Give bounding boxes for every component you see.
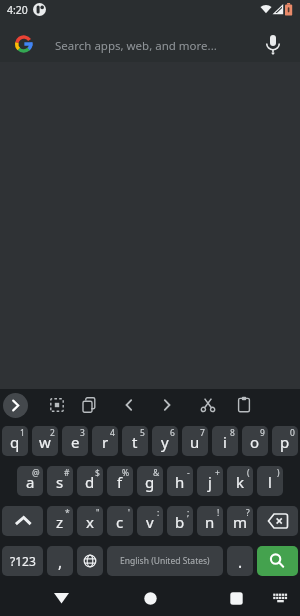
button[interactable]: f <box>107 466 133 496</box>
staticText: English (United States) <box>120 555 210 567</box>
staticText: d <box>85 472 95 492</box>
button[interactable]: j <box>197 466 223 496</box>
staticText: 6 <box>170 427 175 439</box>
staticText: ? <box>246 507 250 519</box>
staticText: c <box>116 512 124 532</box>
button[interactable]: o <box>242 426 268 456</box>
staticText: . <box>238 551 243 572</box>
staticText: 4 <box>110 427 115 439</box>
button[interactable] <box>45 393 69 417</box>
staticText: j <box>208 472 212 492</box>
staticText: 4:20 <box>7 3 28 17</box>
staticText: * <box>65 507 70 519</box>
button[interactable]: z <box>47 506 73 536</box>
staticText: z <box>56 512 64 532</box>
button[interactable] <box>117 393 141 417</box>
button[interactable]: English (United States) <box>107 546 223 576</box>
button[interactable]: x <box>77 506 103 536</box>
button[interactable] <box>155 393 179 417</box>
button[interactable] <box>41 578 82 616</box>
staticText: % <box>122 467 130 479</box>
staticText: m <box>233 512 248 532</box>
staticText: @ <box>32 467 40 479</box>
staticText: f <box>117 472 123 492</box>
staticText: 9 <box>260 427 265 439</box>
staticText: q <box>10 432 20 452</box>
button[interactable]: w <box>32 426 58 456</box>
button[interactable]: k <box>227 466 253 496</box>
button[interactable]: , <box>47 546 73 576</box>
staticText: b <box>175 512 185 532</box>
staticText: x <box>86 512 94 532</box>
staticText: y <box>161 432 169 452</box>
staticText: # <box>64 467 70 479</box>
button[interactable]: s <box>47 466 73 496</box>
staticText: 1 <box>20 427 25 439</box>
staticText: n <box>205 512 215 532</box>
button[interactable] <box>232 393 256 417</box>
staticText: 3 <box>80 427 85 439</box>
staticText: + <box>215 467 220 479</box>
button[interactable]: g <box>137 466 163 496</box>
button[interactable] <box>257 506 298 536</box>
button[interactable] <box>196 393 220 417</box>
staticText: v <box>146 512 154 532</box>
button[interactable]: t <box>122 426 148 456</box>
staticText: p <box>280 432 290 452</box>
staticText: t <box>132 432 138 452</box>
button[interactable] <box>2 506 43 536</box>
staticText: 8 <box>230 427 235 439</box>
button[interactable]: m <box>227 506 253 536</box>
button[interactable]: i <box>212 426 238 456</box>
staticText: " <box>96 507 100 519</box>
staticText: ! <box>217 507 220 519</box>
button[interactable] <box>3 393 28 418</box>
staticText: s <box>56 472 64 492</box>
button[interactable]: p <box>272 426 298 456</box>
staticText: ( <box>247 467 250 479</box>
button[interactable]: h <box>167 466 193 496</box>
staticText: 2 <box>50 427 55 439</box>
staticText: 5 <box>140 427 145 439</box>
button[interactable]: a <box>17 466 43 496</box>
button[interactable]: u <box>182 426 208 456</box>
button[interactable]: c <box>107 506 133 536</box>
staticText: ?123 <box>10 553 36 569</box>
button[interactable]: q <box>2 426 28 456</box>
staticText: ' <box>128 507 130 519</box>
staticText: k <box>236 472 245 492</box>
staticText: 0 <box>290 427 295 439</box>
button[interactable] <box>257 546 298 576</box>
button[interactable]: v <box>137 506 163 536</box>
staticText: o <box>250 432 260 452</box>
staticText: , <box>58 551 63 572</box>
button[interactable]: . <box>227 546 253 576</box>
staticText: e <box>71 432 80 452</box>
staticText: Search apps, web, and more... <box>55 38 217 54</box>
staticText: w <box>39 432 51 452</box>
button[interactable]: e <box>62 426 88 456</box>
staticText: : <box>157 507 160 519</box>
button[interactable]: n <box>197 506 223 536</box>
button[interactable]: b <box>167 506 193 536</box>
button[interactable] <box>77 393 101 417</box>
button[interactable]: ?123 <box>2 546 43 576</box>
staticText: g <box>145 472 155 492</box>
button[interactable] <box>269 587 295 609</box>
staticText: i <box>223 432 227 452</box>
staticText: ) <box>277 467 280 479</box>
staticText: h <box>175 472 185 492</box>
button[interactable]: l <box>257 466 283 496</box>
button[interactable]: r <box>92 426 118 456</box>
staticText: r <box>102 432 109 452</box>
staticText: & <box>153 467 160 479</box>
button[interactable]: y <box>152 426 178 456</box>
button[interactable] <box>77 546 103 576</box>
button[interactable] <box>216 578 257 616</box>
staticText: 7 <box>200 427 205 439</box>
button[interactable] <box>262 31 284 58</box>
staticText: ; <box>187 507 190 519</box>
button[interactable] <box>0 18 300 62</box>
button[interactable]: d <box>77 466 103 496</box>
button[interactable] <box>130 578 171 616</box>
